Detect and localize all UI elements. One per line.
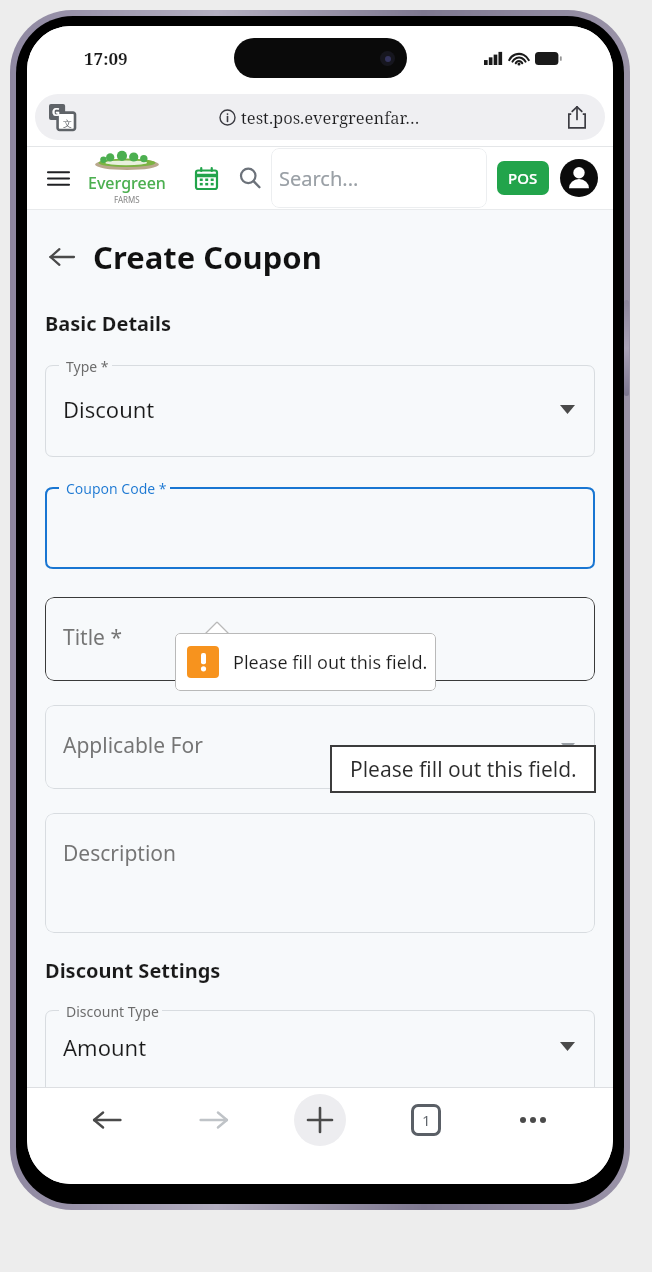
staticText: Coupon Code *	[66, 479, 167, 498]
button[interactable]: POS	[497, 161, 549, 195]
button[interactable]: Description	[45, 813, 595, 933]
staticText: Discount Type	[66, 1002, 159, 1021]
button[interactable]: Type *	[45, 357, 595, 457]
button[interactable]: Tabs	[400, 1094, 452, 1146]
button[interactable]: Search...	[271, 148, 487, 208]
button[interactable]: Back	[81, 1094, 133, 1146]
staticText: G	[52, 104, 60, 119]
button[interactable]: Title *	[45, 597, 595, 681]
staticText: Please fill out this field.	[350, 755, 577, 784]
staticText: Discount Settings	[45, 957, 221, 984]
staticText: Applicable For	[63, 731, 203, 760]
staticText: Basic Details	[45, 310, 172, 337]
staticText: FARMS	[114, 194, 140, 205]
button[interactable]: More	[507, 1094, 559, 1146]
other: Back	[45, 240, 79, 274]
staticText: 1	[422, 1110, 431, 1130]
staticText: Evergreen	[88, 172, 166, 194]
staticText: Please fill out this field.	[233, 650, 428, 675]
button[interactable]: Discount Type	[45, 1002, 595, 1087]
button[interactable]: Account	[559, 158, 599, 198]
button[interactable]: Translate	[35, 94, 605, 140]
staticText: Title *	[63, 623, 122, 652]
button[interactable]: Menu	[43, 163, 73, 193]
staticText: test.pos.evergreenfar…	[241, 106, 420, 128]
staticText: Create Coupon	[93, 236, 322, 278]
button[interactable]: Forward	[188, 1094, 240, 1146]
button[interactable]: Share	[565, 105, 589, 129]
button[interactable]: Translate	[49, 104, 75, 130]
button[interactable]: Coupon Code *	[45, 479, 595, 569]
staticText: POS	[508, 168, 538, 188]
staticText: Search...	[279, 165, 359, 192]
staticText: 17:09	[84, 47, 128, 70]
staticText: Description	[63, 839, 177, 868]
button[interactable]: Applicable For	[45, 705, 595, 789]
staticText: Type *	[66, 357, 109, 376]
button[interactable]: Evergreen	[85, 151, 169, 205]
button[interactable]: Back	[45, 236, 322, 278]
staticText: Amount	[63, 1032, 147, 1062]
button[interactable]: New tab	[294, 1094, 346, 1146]
button[interactable]: Search	[235, 163, 265, 193]
staticText: Discount	[63, 394, 155, 424]
staticText: 文	[63, 118, 72, 129]
button[interactable]: Calendar	[191, 163, 221, 193]
